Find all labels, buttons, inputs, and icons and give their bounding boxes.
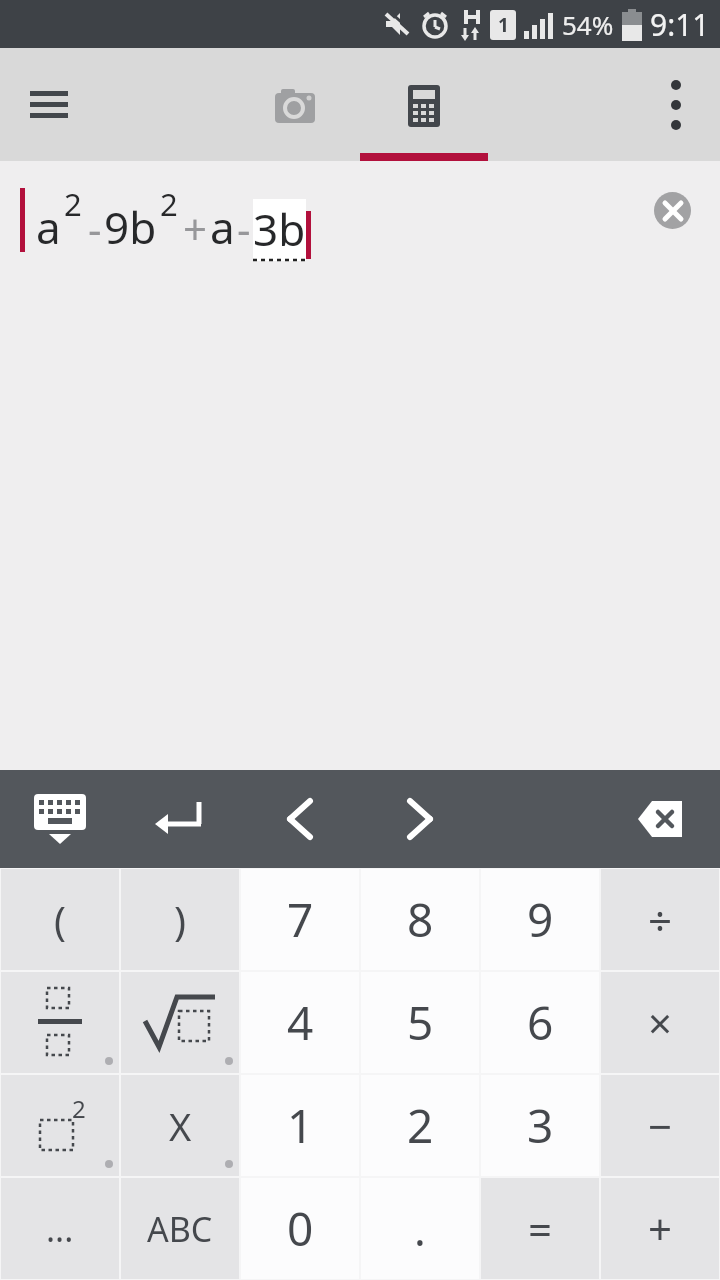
staticText: - (237, 200, 251, 257)
staticText: 9 (527, 888, 554, 951)
button[interactable] (360, 58, 488, 153)
staticText: 2 (64, 183, 82, 225)
staticText: × (648, 994, 673, 1051)
button[interactable]: X (121, 1075, 239, 1176)
button[interactable] (260, 779, 340, 859)
staticText: = (528, 1200, 553, 1257)
staticText: 4 (287, 991, 314, 1054)
staticText: 3 (527, 1094, 554, 1157)
button[interactable]: = (481, 1178, 599, 1279)
button[interactable]: + (601, 1178, 719, 1279)
button[interactable]: 3 (481, 1075, 599, 1176)
staticText: ÷ (648, 891, 673, 948)
staticText: 9:11 (650, 4, 710, 45)
button[interactable] (14, 77, 84, 133)
button[interactable]: 1 (241, 1075, 359, 1176)
button[interactable]: ... (1, 1178, 119, 1279)
button[interactable]: 0 (241, 1178, 359, 1279)
button[interactable]: 6 (481, 972, 599, 1073)
staticText: 6 (527, 991, 554, 1054)
button[interactable] (121, 972, 239, 1073)
button[interactable]: ) (121, 869, 239, 970)
button[interactable] (622, 779, 702, 859)
button[interactable] (1, 972, 119, 1073)
staticText: ( (54, 893, 66, 947)
staticText: 1 (287, 1094, 314, 1157)
button[interactable]: 2 (361, 1075, 479, 1176)
button[interactable] (20, 779, 100, 859)
staticText: 5 (407, 991, 434, 1054)
button[interactable] (646, 77, 706, 133)
staticText: + (648, 1200, 673, 1257)
staticText: . (414, 1199, 426, 1259)
button[interactable]: ( (1, 869, 119, 970)
button[interactable]: ÷ (601, 869, 719, 970)
button[interactable]: 9 (481, 869, 599, 970)
button[interactable]: 7 (241, 869, 359, 970)
staticText: 1 (498, 12, 509, 38)
button[interactable]: 2 (1, 1075, 119, 1176)
staticText: 0 (287, 1197, 314, 1260)
button[interactable]: − (601, 1075, 719, 1176)
staticText: + (183, 200, 208, 257)
staticText: 54% (562, 7, 614, 42)
button[interactable]: × (601, 972, 719, 1073)
button[interactable] (380, 779, 460, 859)
staticText: - (88, 200, 102, 257)
button[interactable] (138, 779, 218, 859)
button[interactable]: 4 (241, 972, 359, 1073)
button[interactable] (231, 58, 359, 153)
button[interactable]: 8 (361, 869, 479, 970)
staticText: 2 (160, 183, 178, 225)
staticText: a (36, 197, 61, 257)
staticText: X (169, 1100, 192, 1152)
staticText: 8 (407, 888, 434, 951)
staticText: ABC (147, 1206, 213, 1252)
button[interactable] (654, 192, 691, 229)
button[interactable]: ABC (121, 1178, 239, 1279)
staticText: 7 (287, 888, 314, 951)
staticText: 9b (104, 197, 157, 257)
staticText: 3b (253, 199, 306, 259)
button[interactable]: . (361, 1178, 479, 1279)
staticText: ) (174, 893, 186, 947)
staticText: 2 (407, 1094, 434, 1157)
button[interactable]: 5 (361, 972, 479, 1073)
staticText: a (210, 197, 235, 257)
staticText: − (648, 1097, 673, 1154)
staticText: ... (46, 1206, 74, 1252)
staticText: 2 (72, 1092, 86, 1125)
